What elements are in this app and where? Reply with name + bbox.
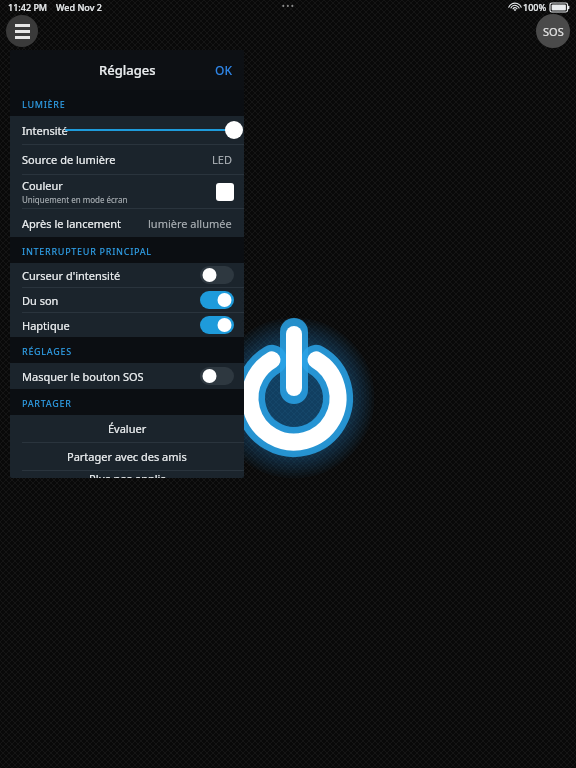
staticText: Uniquement en mode écran xyxy=(22,194,128,205)
staticText: Réglages xyxy=(99,61,156,79)
staticText: 100% xyxy=(523,1,547,13)
staticText: OK xyxy=(215,62,232,78)
button[interactable]: Partager avec des amis xyxy=(10,443,244,470)
staticText: Haptique xyxy=(22,318,200,333)
button[interactable]: Curseur d'intensité xyxy=(10,263,244,287)
staticText: 11:42 PM xyxy=(8,1,48,13)
staticText: Intensité xyxy=(22,123,68,138)
staticText: PARTAGER xyxy=(22,397,72,409)
button[interactable]: Color enabled xyxy=(216,183,234,201)
button[interactable]: Intensity slider xyxy=(66,118,244,142)
staticText: LUMIÈRE xyxy=(22,98,66,110)
staticText: Du son xyxy=(22,293,200,308)
button[interactable]: Haptique xyxy=(10,313,244,337)
button[interactable]: Plus nos applis xyxy=(10,471,244,478)
staticText: Wed Nov 2 xyxy=(56,1,102,13)
staticText: lumière allumée xyxy=(148,216,232,231)
staticText: Source de lumière xyxy=(22,152,116,167)
staticText: RÉGLAGES xyxy=(22,345,72,357)
button[interactable]: Masquer le bouton SOS xyxy=(10,363,244,389)
button[interactable]: Du son xyxy=(10,288,244,312)
staticText: Plus nos applis xyxy=(89,471,166,478)
staticText: Couleur xyxy=(22,178,63,193)
button[interactable]: SOS xyxy=(536,14,570,48)
button[interactable]: Évaluer xyxy=(10,415,244,442)
button[interactable]: Power xyxy=(234,318,354,466)
staticText: SOS xyxy=(543,24,564,39)
staticText: • • • xyxy=(282,2,294,12)
staticText: Masquer le bouton SOS xyxy=(22,369,200,384)
staticText: INTERRUPTEUR PRINCIPAL xyxy=(22,245,152,257)
button[interactable]: OK xyxy=(209,56,238,84)
staticText: Évaluer xyxy=(108,421,147,436)
button[interactable]: Menu xyxy=(6,15,38,47)
staticText: LED xyxy=(212,152,232,167)
staticText: Curseur d'intensité xyxy=(22,268,200,283)
staticText: Après le lancement xyxy=(22,216,121,231)
staticText: Partager avec des amis xyxy=(67,449,187,464)
